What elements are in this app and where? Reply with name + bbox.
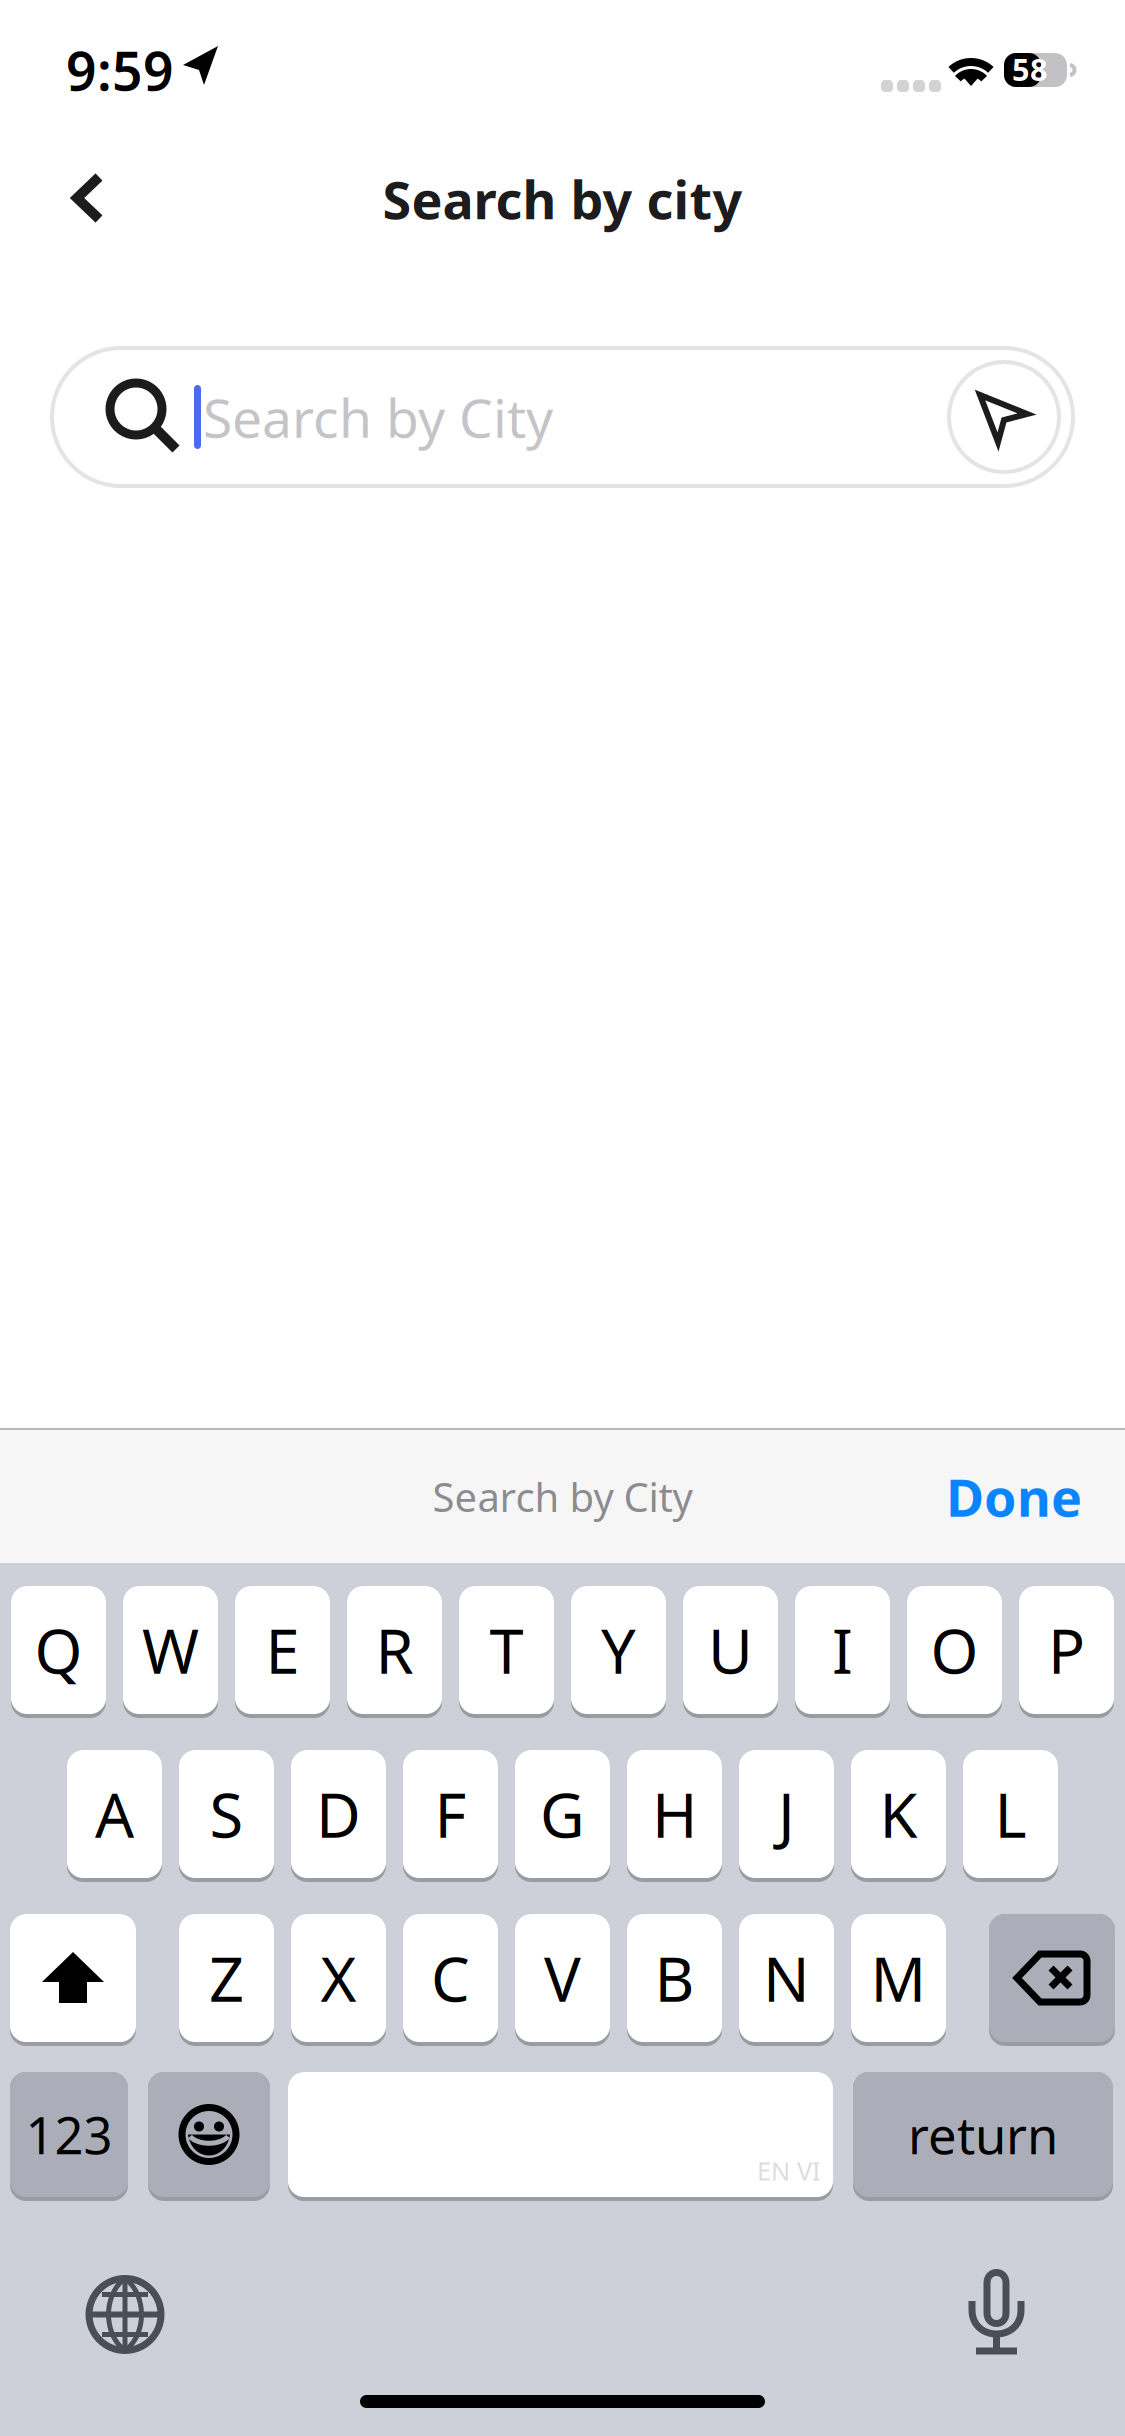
button[interactable]: B: [627, 1914, 722, 2046]
staticText: C: [431, 1936, 470, 2020]
staticText: P: [1048, 1608, 1085, 1692]
button[interactable]: Back: [0, 126, 140, 226]
button[interactable]: F: [403, 1750, 498, 1882]
staticText: 9:59: [66, 34, 174, 106]
button[interactable]: L: [963, 1750, 1058, 1882]
staticText: I: [832, 1608, 853, 1692]
button[interactable]: O: [907, 1586, 1002, 1718]
button[interactable]: M: [851, 1914, 946, 2046]
button[interactable]: V: [515, 1914, 610, 2046]
button[interactable]: U: [683, 1586, 778, 1718]
button[interactable]: E: [235, 1586, 330, 1718]
button[interactable]: I: [795, 1586, 890, 1718]
staticText: E: [265, 1608, 299, 1692]
staticText: EN VI: [757, 2153, 821, 2188]
button[interactable]: K: [851, 1750, 946, 1882]
button[interactable]: Emoji: [148, 2072, 270, 2201]
button[interactable]: Z: [179, 1914, 274, 2046]
button[interactable]: Y: [571, 1586, 666, 1718]
staticText: Search by city: [382, 164, 742, 234]
staticText: F: [434, 1772, 466, 1856]
staticText: H: [652, 1772, 697, 1856]
button[interactable]: 123: [10, 2072, 128, 2201]
button[interactable]: S: [179, 1750, 274, 1882]
staticText: S: [209, 1772, 243, 1856]
staticText: return: [908, 2100, 1058, 2169]
button[interactable]: space: [288, 2072, 833, 2201]
staticText: U: [708, 1608, 753, 1692]
staticText: A: [95, 1772, 134, 1856]
button[interactable]: C: [403, 1914, 498, 2046]
staticText: K: [879, 1772, 917, 1856]
staticText: R: [375, 1608, 413, 1692]
button[interactable]: Next keyboard: [61, 2231, 189, 2359]
staticText: L: [994, 1772, 1026, 1856]
staticText: D: [316, 1772, 361, 1856]
button[interactable]: N: [739, 1914, 834, 2046]
button[interactable]: G: [515, 1750, 610, 1882]
button[interactable]: return: [853, 2072, 1113, 2201]
staticText: Search by City: [203, 381, 553, 453]
staticText: T: [489, 1608, 523, 1692]
staticText: X: [320, 1936, 356, 2020]
button[interactable]: D: [291, 1750, 386, 1882]
button[interactable]: W: [123, 1586, 218, 1718]
staticText: N: [763, 1936, 810, 2020]
staticText: W: [142, 1608, 199, 1692]
staticText: O: [930, 1608, 978, 1692]
staticText: B: [654, 1936, 694, 2020]
staticText: Done: [946, 1461, 1082, 1532]
staticText: Search by City: [432, 1469, 692, 1524]
button[interactable]: Dictate: [974, 2228, 1079, 2363]
button[interactable]: Use current location: [947, 360, 1061, 474]
button[interactable]: X: [291, 1914, 386, 2046]
staticText: Y: [601, 1608, 636, 1692]
staticText: 58: [1012, 48, 1048, 90]
button[interactable]: R: [347, 1586, 442, 1718]
button[interactable]: T: [459, 1586, 554, 1718]
button[interactable]: Shift: [10, 1914, 136, 2046]
button[interactable]: Delete: [989, 1914, 1115, 2046]
button[interactable]: Q: [11, 1586, 106, 1718]
staticText: Q: [34, 1608, 82, 1692]
button[interactable]: P: [1019, 1586, 1114, 1718]
staticText: G: [540, 1772, 585, 1856]
button[interactable]: A: [67, 1750, 162, 1882]
button[interactable]: Done: [916, 1437, 1112, 1556]
button[interactable]: H: [627, 1750, 722, 1882]
staticText: V: [544, 1936, 581, 2020]
staticText: M: [870, 1936, 926, 2020]
staticText: 123: [25, 2100, 112, 2169]
staticText: Z: [209, 1936, 244, 2020]
staticText: J: [778, 1772, 795, 1856]
button[interactable]: J: [739, 1750, 834, 1882]
